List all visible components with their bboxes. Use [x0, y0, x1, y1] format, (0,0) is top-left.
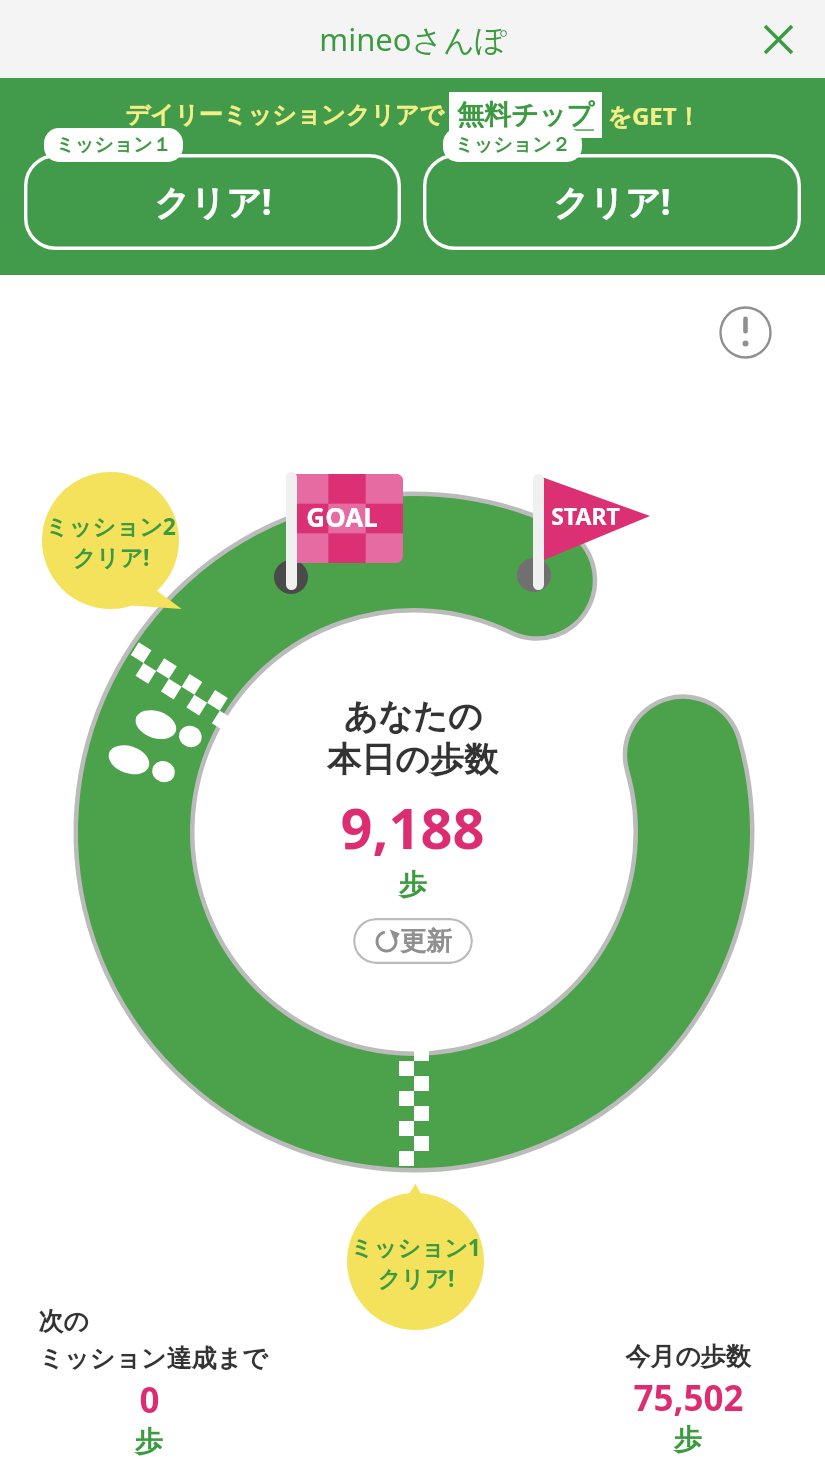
staticText: あなたの	[343, 695, 483, 738]
staticText: 今月の歩数	[625, 1341, 751, 1372]
staticText: クリア!	[154, 178, 272, 226]
staticText: 更新	[400, 925, 452, 958]
staticText: ミッション２	[454, 133, 571, 157]
staticText: ミッション達成まで	[38, 1343, 268, 1374]
button[interactable]: クリア!	[24, 128, 401, 250]
staticText: クリア!	[72, 541, 150, 572]
button[interactable]: Close	[755, 16, 801, 62]
button[interactable]: Information	[719, 306, 772, 359]
staticText: をGET！	[607, 99, 701, 132]
staticText: 歩	[135, 1424, 163, 1459]
staticText: START	[551, 500, 620, 531]
staticText: 歩	[399, 867, 427, 902]
staticText: GOAL	[306, 499, 378, 534]
staticText: 歩	[674, 1422, 702, 1457]
staticText: 本日の歩数	[327, 738, 498, 781]
staticText: クリア!	[553, 178, 671, 226]
staticText: クリア!	[377, 1262, 455, 1293]
staticText: 次の	[38, 1306, 89, 1337]
staticText: ミッション1	[350, 1231, 481, 1262]
staticText: ミッション2	[45, 510, 176, 541]
button[interactable]: クリア!	[423, 128, 801, 250]
staticText: ミッション１	[55, 133, 172, 157]
staticText: 0	[139, 1376, 160, 1424]
staticText: 無料チップ	[457, 98, 594, 132]
staticText: 9,188	[340, 789, 485, 865]
staticText: デイリーミッションクリアで	[125, 100, 444, 130]
staticText: mineoさんぽ	[319, 18, 507, 60]
staticText: 75,502	[633, 1374, 744, 1422]
button[interactable]: 更新	[353, 918, 473, 964]
